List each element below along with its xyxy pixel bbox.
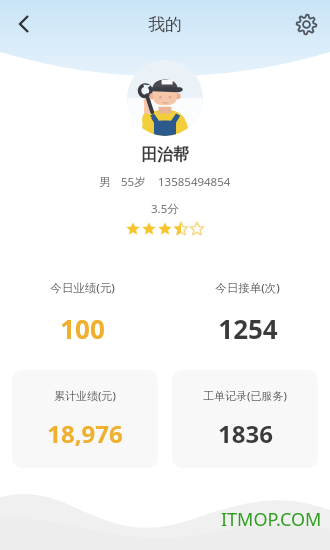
button[interactable]: 工单记录(已服务) bbox=[172, 370, 318, 468]
staticText: 55岁 bbox=[121, 174, 146, 190]
staticText: 今日业绩(元) bbox=[50, 280, 115, 296]
staticText: 累计业绩(元) bbox=[54, 388, 116, 403]
button[interactable]: Back bbox=[0, 0, 48, 48]
staticText: 1254 bbox=[218, 311, 278, 346]
staticText: 3.5分 bbox=[151, 201, 179, 217]
button[interactable]: 今日接单(次) bbox=[165, 276, 330, 350]
staticText: 我的 bbox=[148, 14, 182, 35]
staticText: 工单记录(已服务) bbox=[203, 388, 287, 403]
staticText: ITMOP.COM bbox=[221, 507, 322, 532]
staticText: 13585494854 bbox=[158, 174, 231, 190]
button[interactable]: 累计业绩(元) bbox=[12, 370, 158, 468]
staticText: 100 bbox=[60, 311, 105, 346]
staticText: 今日接单(次) bbox=[215, 280, 280, 296]
button[interactable]: 今日业绩(元) bbox=[0, 276, 165, 350]
staticText: 18,976 bbox=[47, 417, 123, 450]
staticText: 1836 bbox=[218, 417, 273, 450]
button[interactable]: Profile photo bbox=[127, 60, 203, 136]
staticText: 男 bbox=[99, 175, 111, 189]
button[interactable]: Settings bbox=[282, 0, 330, 48]
staticText: 田治帮 bbox=[141, 145, 189, 165]
